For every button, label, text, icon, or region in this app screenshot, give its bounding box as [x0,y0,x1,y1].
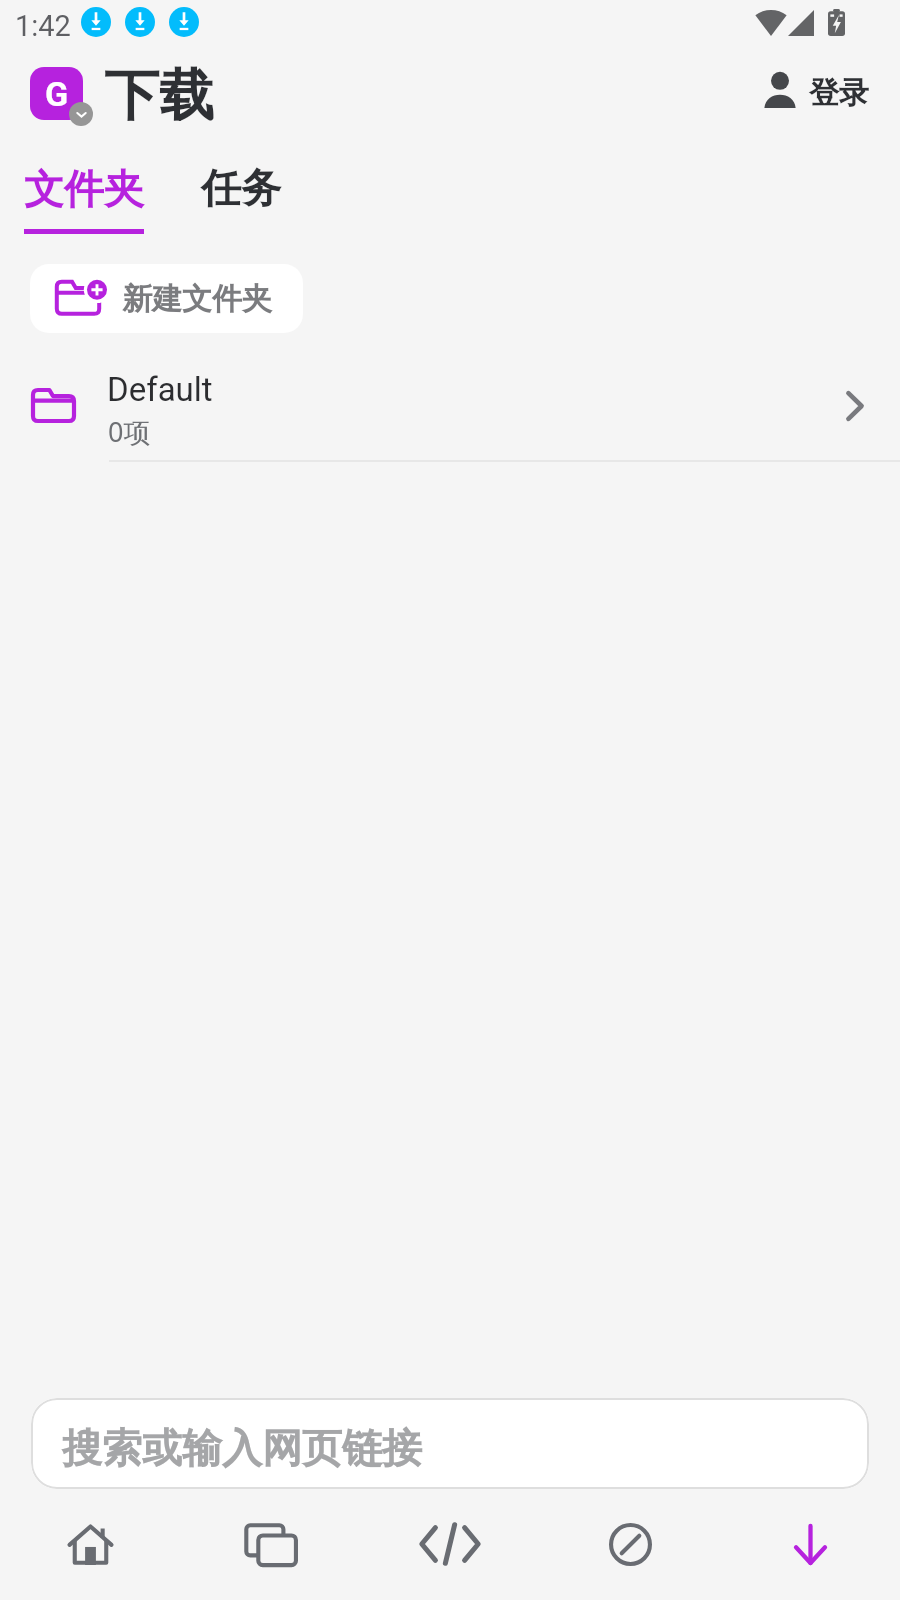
button[interactable]: 任务 [182,156,296,240]
button[interactable]: Switch app [69,102,93,126]
staticText: Default [107,370,213,409]
button[interactable]: Default [0,352,900,462]
staticText: 登录 [809,74,869,112]
staticText: 下载 [104,61,214,130]
staticText: 搜索或输入网页链接 [62,1423,422,1473]
button[interactable]: Downloads [765,1499,855,1589]
button[interactable]: 新建文件夹 [30,264,303,333]
button[interactable]: App logo [30,67,83,120]
button[interactable]: 搜索或输入网页链接 [31,1398,869,1489]
button[interactable]: Ad block [585,1499,675,1589]
staticText: 新建文件夹 [122,280,272,318]
staticText: 1:42 [15,9,71,43]
button[interactable]: 登录 [757,66,875,112]
button[interactable]: Tabs [225,1499,315,1589]
button[interactable]: Home [45,1499,135,1589]
staticText: 文件夹 [24,164,144,214]
staticText: G [45,74,69,114]
staticText: 0项 [108,413,151,450]
button[interactable]: 文件夹 [6,156,162,240]
button[interactable]: View source [405,1499,495,1589]
staticText: 任务 [201,163,281,213]
